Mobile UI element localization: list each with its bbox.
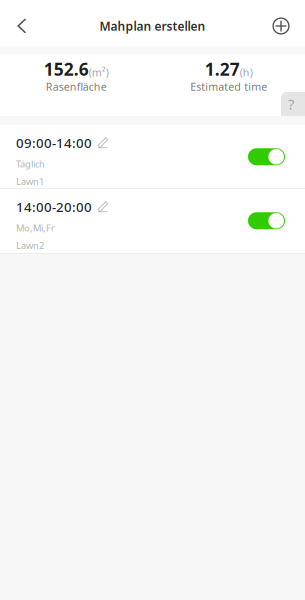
- staticText: 152.6: [44, 57, 89, 80]
- staticText: (m²): [89, 65, 109, 79]
- staticText: Mo,Mi,Fr: [16, 222, 55, 234]
- staticText: 09:00-14:00: [16, 134, 92, 152]
- staticText: Mahplan erstellen: [99, 18, 205, 34]
- button[interactable]: Add schedule: [263, 0, 299, 46]
- staticText: ?: [288, 94, 294, 114]
- staticText: 1.27: [205, 57, 240, 80]
- staticText: (h): [240, 65, 253, 79]
- staticText: 14:00-20:00: [16, 198, 92, 216]
- staticText: Rasenfläche: [46, 79, 107, 94]
- button[interactable]: Help: [274, 86, 305, 116]
- staticText: Lawn2: [16, 239, 44, 251]
- button[interactable]: 14:00-20:00: [0, 189, 305, 253]
- staticText: Estimated time: [190, 79, 267, 94]
- staticText: Lawn1: [16, 175, 44, 187]
- button[interactable]: Back: [5, 0, 39, 46]
- staticText: Täglich: [16, 158, 45, 170]
- button[interactable]: 09:00-14:00: [0, 125, 305, 188]
